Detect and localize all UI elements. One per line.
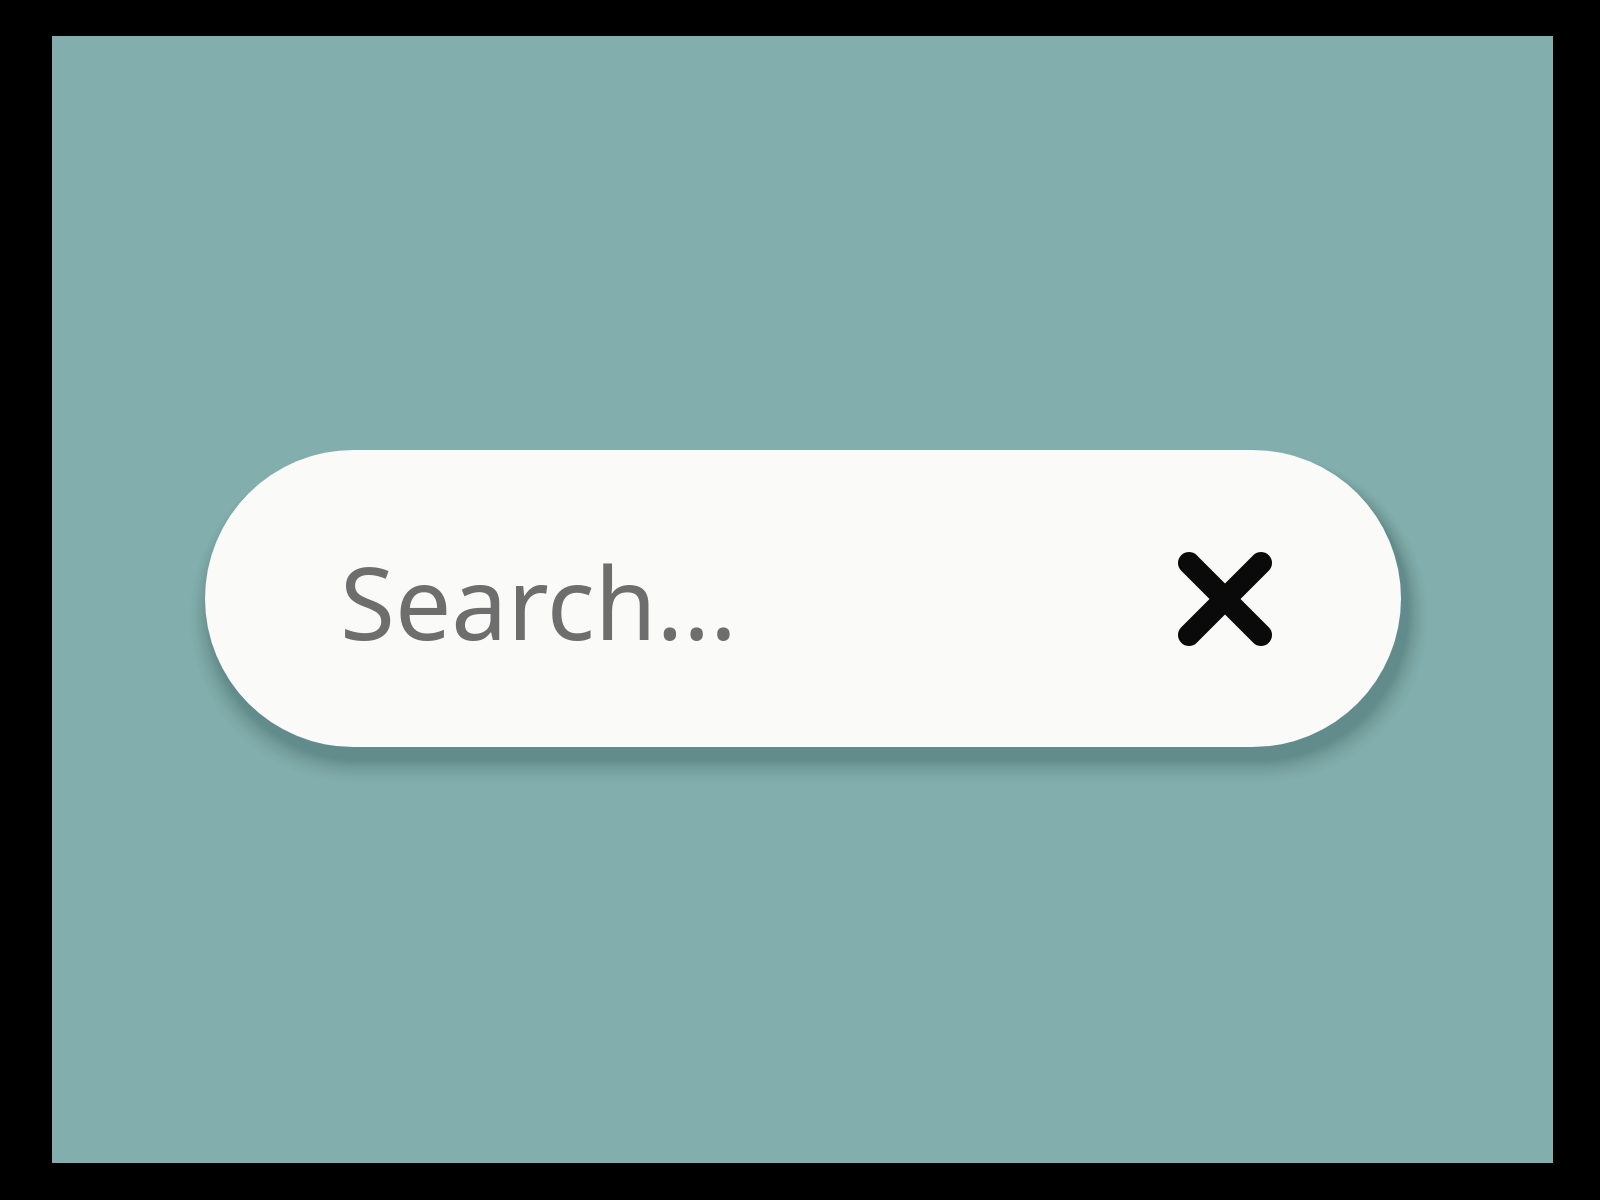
button[interactable]: Search...	[205, 450, 1401, 747]
staticText: Search...	[340, 533, 737, 669]
button[interactable]: Clear search	[1151, 525, 1299, 673]
